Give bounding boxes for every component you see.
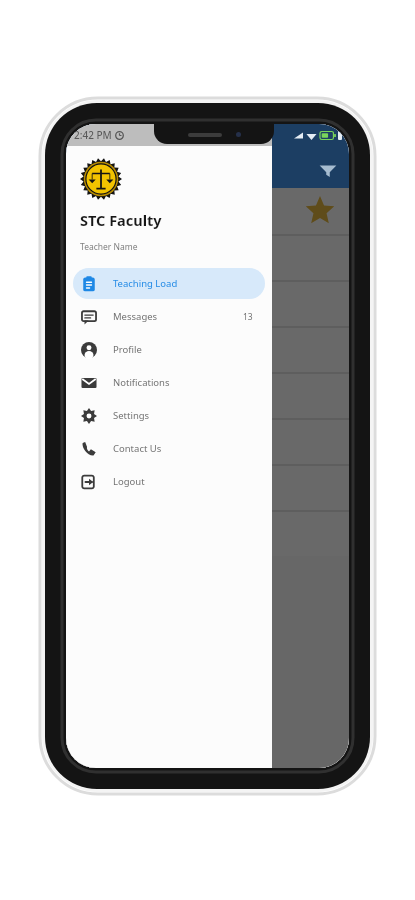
staticText: Settings bbox=[113, 409, 150, 422]
button[interactable]: Settings bbox=[73, 400, 265, 431]
button[interactable] bbox=[66, 282, 349, 326]
button[interactable] bbox=[66, 466, 349, 510]
staticText: STC Faculty bbox=[80, 210, 162, 230]
button[interactable]: Contact Us bbox=[73, 433, 265, 464]
staticText: Messages bbox=[113, 310, 158, 323]
button[interactable] bbox=[66, 420, 349, 464]
staticText: 13 bbox=[243, 311, 253, 323]
button[interactable] bbox=[66, 512, 349, 556]
button[interactable]: Filter bbox=[317, 159, 339, 181]
button[interactable]: Teaching Load bbox=[73, 268, 265, 299]
button[interactable]: Notifications bbox=[73, 367, 265, 398]
button[interactable] bbox=[66, 374, 349, 418]
staticText: Notifications bbox=[113, 376, 170, 389]
staticText: Teaching Load bbox=[113, 277, 178, 290]
button[interactable]: Messages bbox=[73, 301, 265, 332]
staticText: Logout bbox=[113, 475, 145, 488]
staticText: Contact Us bbox=[113, 442, 162, 455]
button[interactable] bbox=[66, 236, 349, 280]
staticText: Profile bbox=[113, 343, 142, 356]
button[interactable]: Profile bbox=[73, 334, 265, 365]
staticText: 2:42 PM bbox=[74, 128, 112, 142]
staticText: Teacher Name bbox=[80, 241, 138, 253]
button[interactable]: Logout bbox=[73, 466, 265, 497]
button[interactable] bbox=[66, 188, 349, 234]
button[interactable] bbox=[66, 328, 349, 372]
